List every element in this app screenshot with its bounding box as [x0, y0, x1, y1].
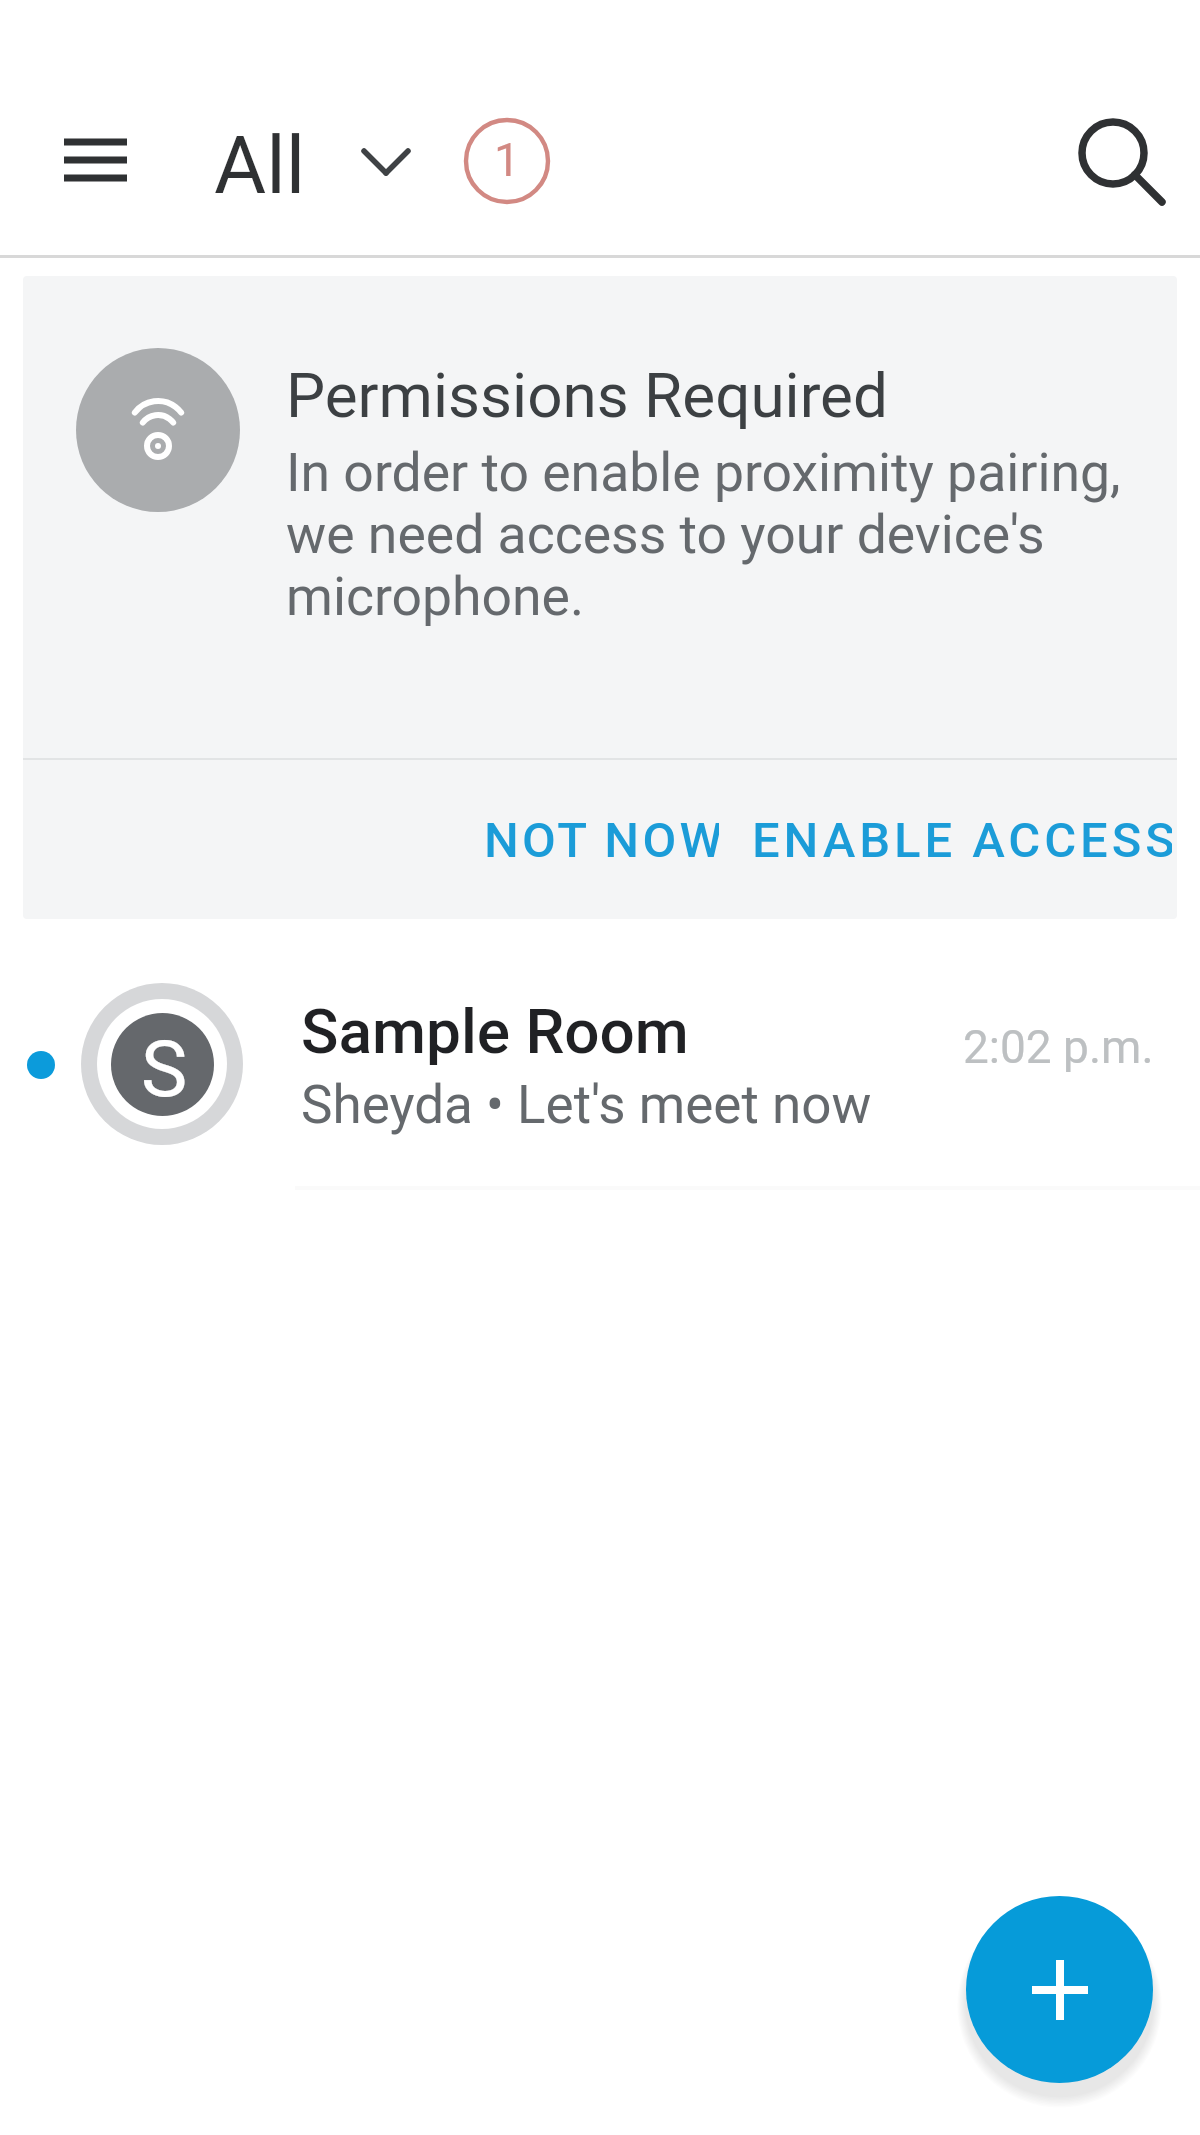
staticText: In order to enable proximity pairing, we… — [286, 441, 1142, 628]
button[interactable]: Search — [1058, 100, 1168, 210]
button[interactable]: All — [200, 104, 430, 216]
button[interactable]: NOT NOW — [484, 800, 719, 880]
button[interactable]: New conversation — [966, 1896, 1153, 2083]
staticText: ENABLE ACCESS — [752, 812, 1172, 869]
button[interactable]: Menu — [44, 110, 148, 210]
button[interactable]: S — [0, 971, 1200, 1190]
button[interactable]: ENABLE ACCESS — [752, 800, 1172, 880]
staticText: Sheyda • Let's meet now — [301, 1074, 872, 1136]
staticText: Sample Room — [301, 995, 689, 1068]
staticText: All — [214, 119, 306, 213]
staticText: Permissions Required — [286, 359, 888, 432]
button[interactable]: Unread count — [463, 117, 551, 205]
staticText: 2:02 p.m. — [963, 1020, 1154, 1074]
staticText: 1 — [494, 133, 520, 187]
staticText: S — [141, 1024, 188, 1115]
staticText: NOT NOW — [484, 812, 719, 869]
